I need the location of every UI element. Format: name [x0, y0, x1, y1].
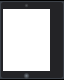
- other: Phone screen: [0, 0, 64, 80]
